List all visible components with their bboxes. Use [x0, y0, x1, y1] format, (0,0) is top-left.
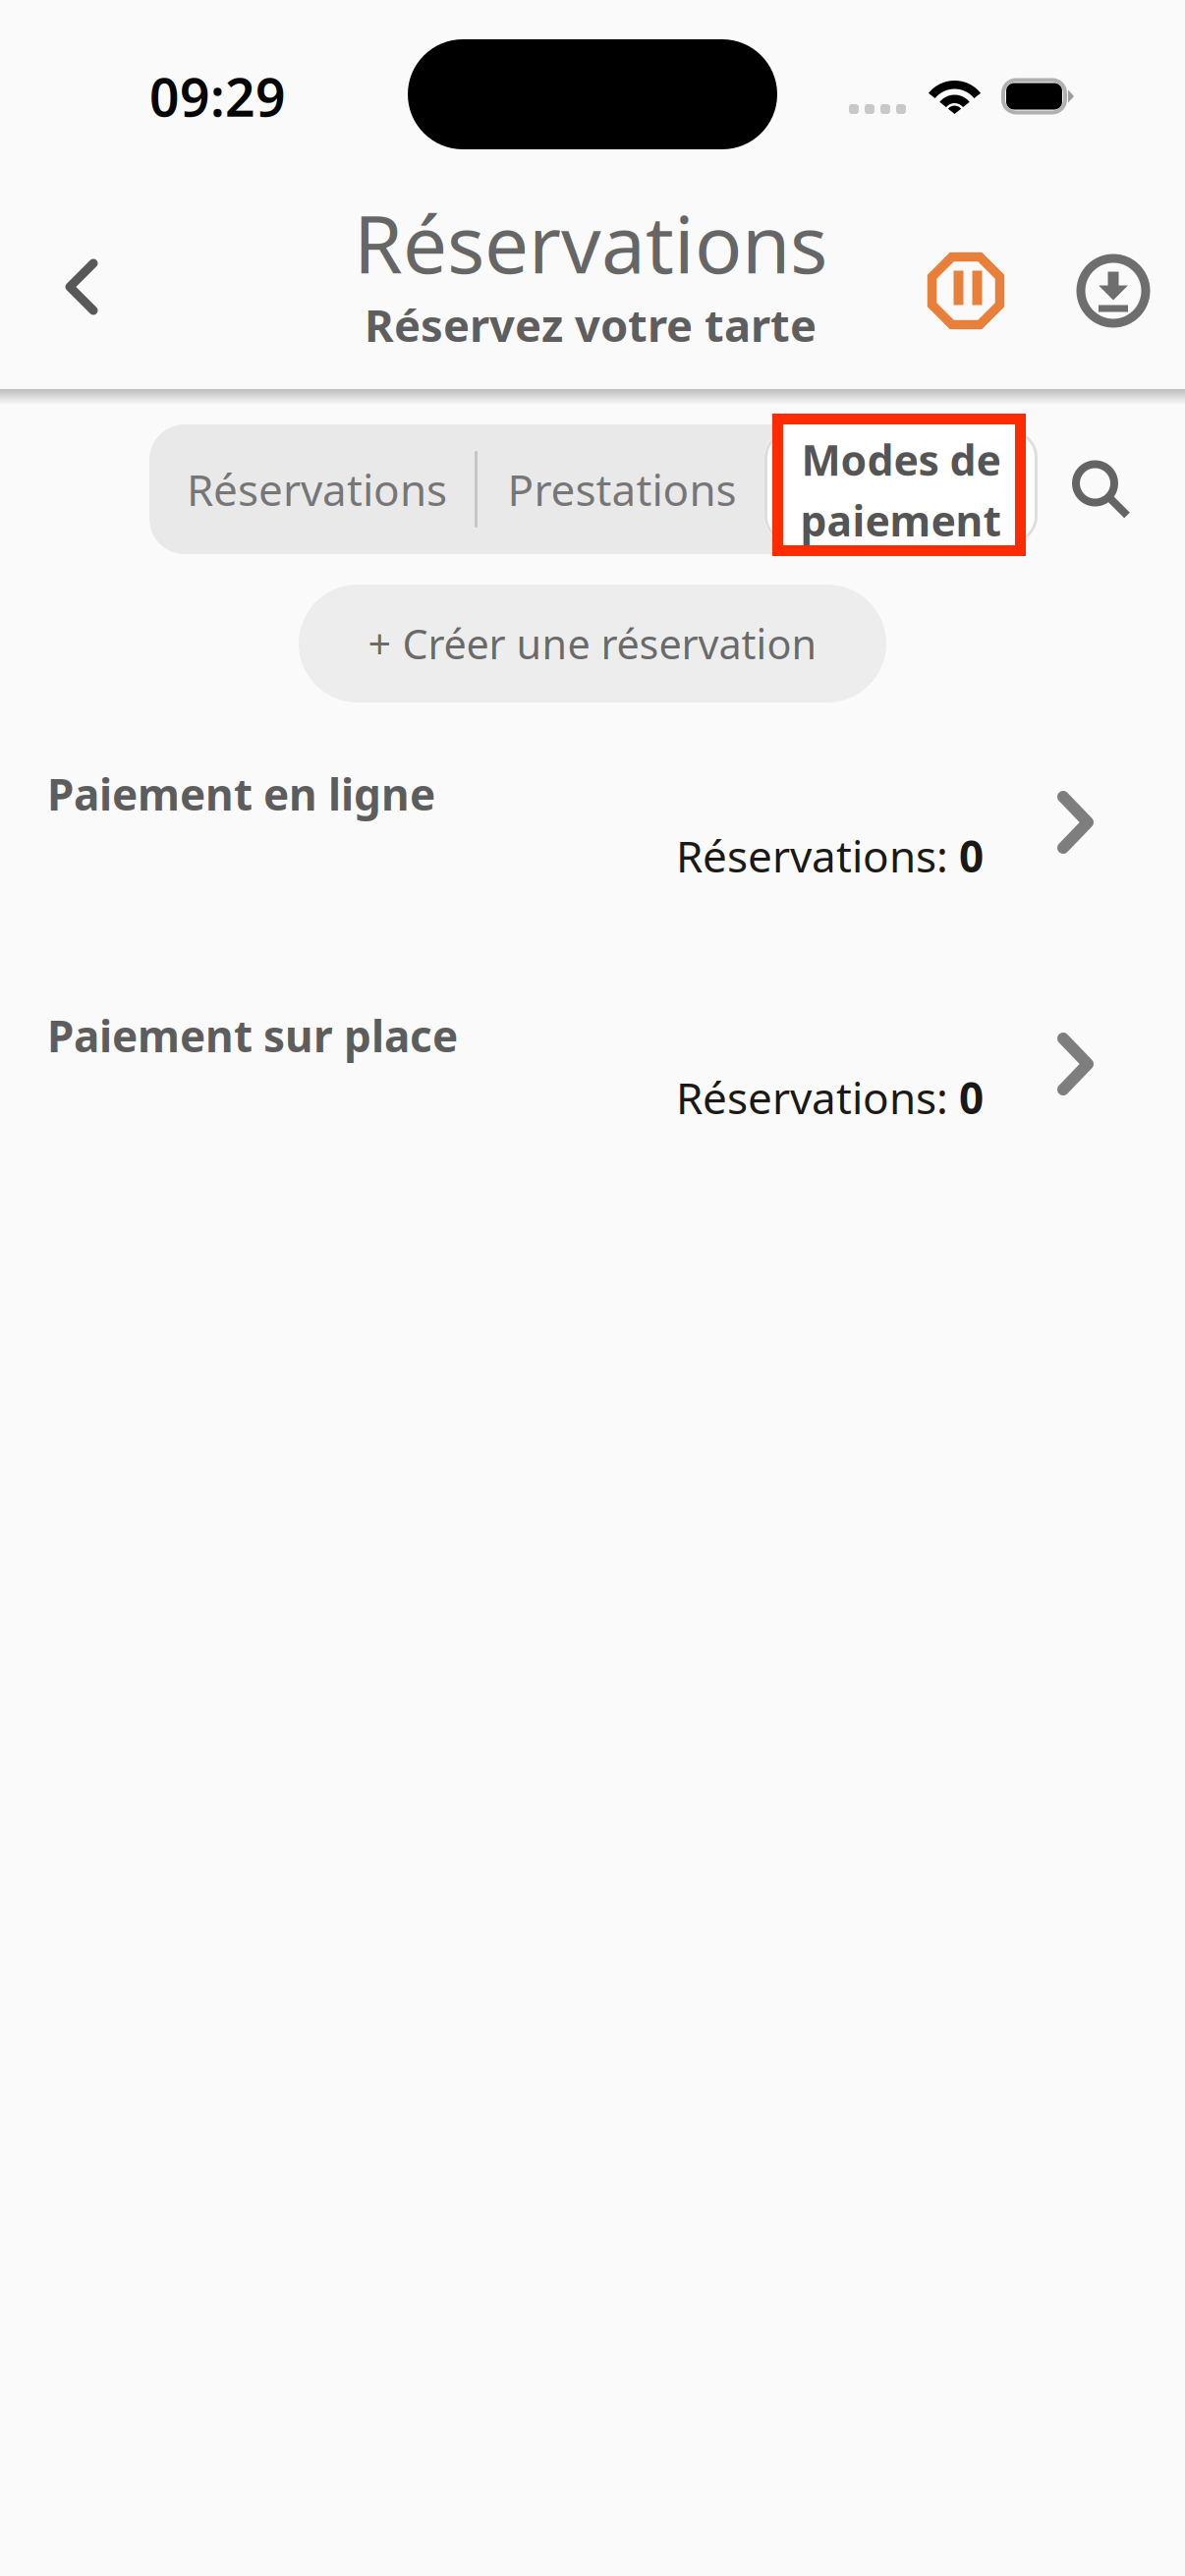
staticText: Réservations	[187, 461, 447, 518]
staticText: Modes de	[801, 432, 1001, 487]
staticText: paiement	[800, 492, 1002, 548]
staticText: + Créer une réservation	[368, 617, 817, 671]
button[interactable]: Download	[1042, 217, 1185, 364]
button[interactable]: Paiement en ligne	[0, 773, 1185, 911]
button[interactable]: Paiement sur place	[0, 1015, 1185, 1152]
staticText: Paiement sur place	[47, 1007, 458, 1064]
staticText: Paiement en ligne	[47, 765, 435, 823]
staticText: Réservations: 0	[676, 827, 984, 884]
staticText: Prestations	[508, 461, 736, 518]
button[interactable]: Back	[8, 213, 155, 361]
staticText: Réservez votre tarte	[365, 295, 817, 354]
staticText: Réservations: 0	[676, 1069, 984, 1126]
staticText: Réservations	[354, 191, 827, 295]
button[interactable]: Modes de	[772, 414, 1026, 556]
button[interactable]: + Créer une réservation	[299, 585, 886, 702]
button[interactable]: Réservations	[149, 424, 475, 554]
button[interactable]: Search	[1070, 424, 1133, 555]
staticText: 09:29	[149, 62, 286, 131]
button[interactable]: Prestations	[478, 424, 764, 554]
button[interactable]: Pause	[890, 217, 1042, 364]
